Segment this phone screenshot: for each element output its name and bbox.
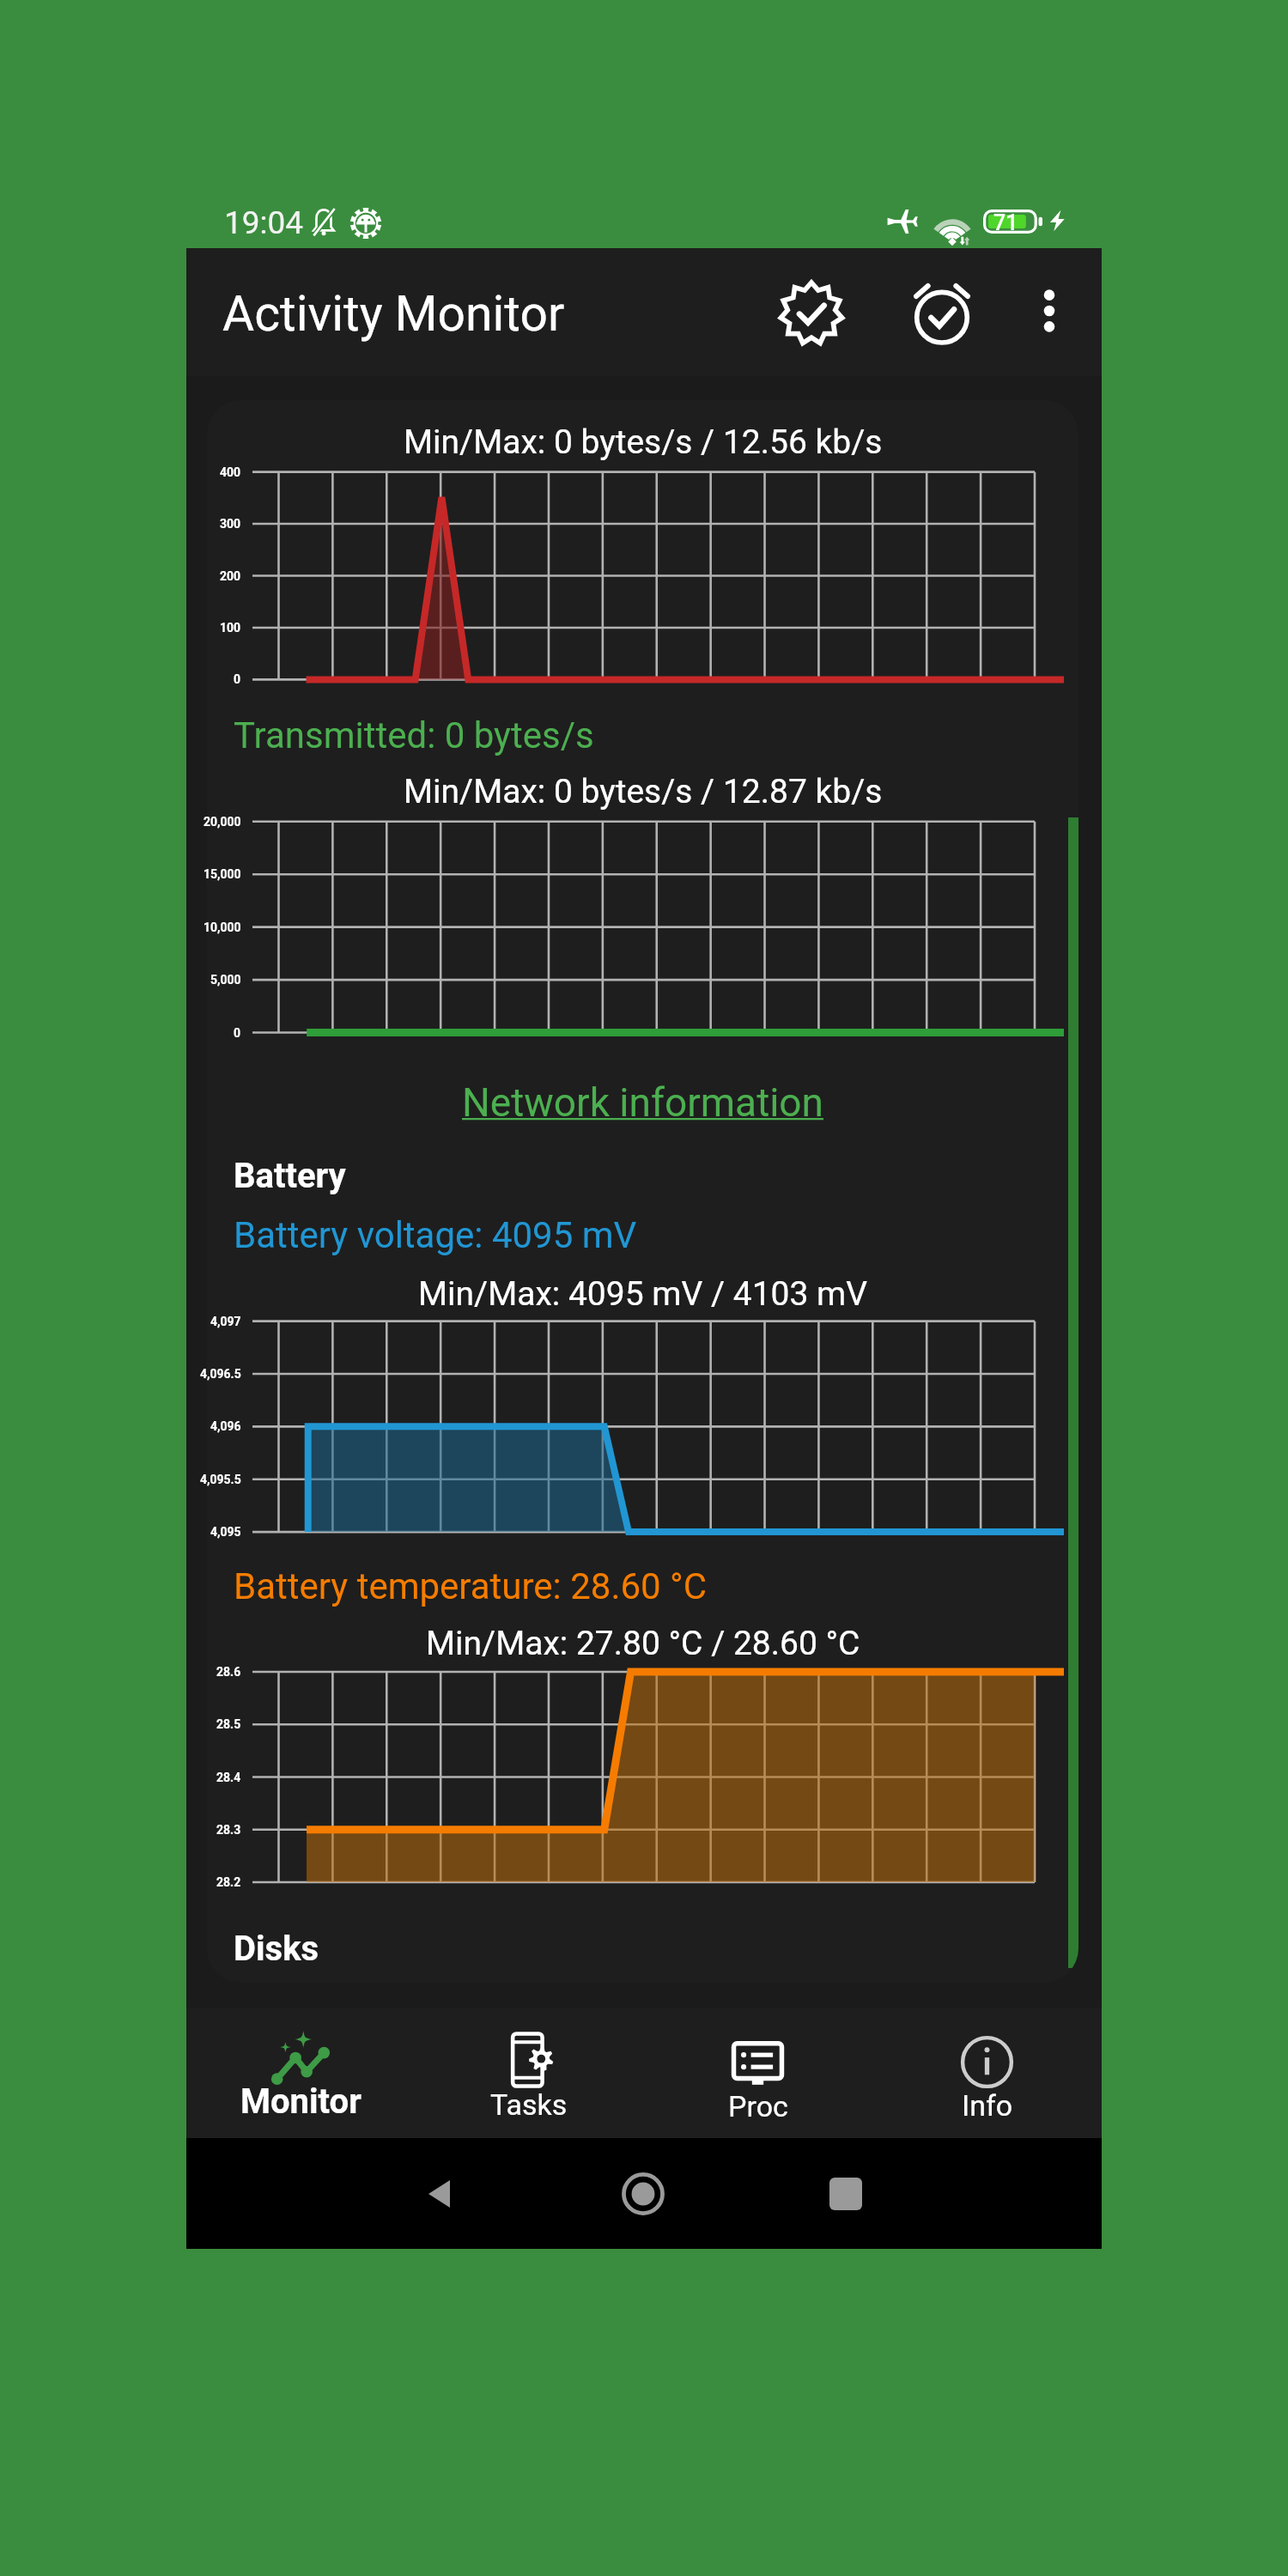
button[interactable]: Tasks — [415, 2008, 643, 2180]
staticText: 10,000 — [204, 920, 241, 934]
staticText: 0 — [234, 1026, 241, 1040]
staticText: Monitor — [240, 2081, 361, 2122]
staticText: 15,000 — [204, 867, 241, 881]
staticText: Activity Monitor — [222, 285, 565, 343]
staticText: Battery voltage: 4095 mV — [234, 1214, 637, 1256]
staticText: 28.2 — [216, 1875, 241, 1889]
button[interactable]: Alarm — [892, 264, 991, 362]
button[interactable]: Home — [566, 2138, 720, 2249]
staticText: 28.5 — [216, 1717, 241, 1731]
staticText: 4,096.5 — [200, 1367, 241, 1381]
staticText: 28.3 — [216, 1823, 241, 1837]
staticText: Min/Max: 27.80 °C / 28.60 °C — [426, 1624, 860, 1663]
button[interactable]: Network information — [462, 1079, 824, 1126]
staticText: 28.6 — [216, 1665, 241, 1679]
staticText: Tasks — [490, 2087, 568, 2122]
button[interactable]: Monitor — [186, 2008, 415, 2180]
staticText: Battery temperature: 28.60 °C — [234, 1565, 708, 1607]
staticText: 200 — [220, 569, 241, 583]
button[interactable]: Verified — [762, 264, 860, 362]
staticText: 4,097 — [210, 1315, 241, 1328]
staticText: 5,000 — [210, 973, 241, 987]
staticText: Min/Max: 4095 mV / 4103 mV — [418, 1274, 868, 1314]
staticText: 400 — [220, 465, 241, 479]
button[interactable]: Back — [363, 2138, 518, 2249]
staticText: 20,000 — [204, 815, 241, 829]
staticText: 4,095 — [210, 1525, 241, 1539]
staticText: 4,095.5 — [200, 1473, 241, 1486]
staticText: 71 — [993, 210, 1018, 235]
staticText: Battery — [234, 1156, 346, 1196]
staticText: 0 — [234, 672, 241, 686]
staticText: 4,096 — [210, 1419, 241, 1433]
staticText: 300 — [220, 517, 241, 531]
staticText: Proc — [728, 2089, 788, 2123]
staticText: Transmitted: 0 bytes/s — [234, 714, 594, 756]
button[interactable]: More options — [1002, 264, 1097, 358]
button[interactable]: Recents — [769, 2138, 923, 2249]
staticText: Min/Max: 0 bytes/s / 12.56 kb/s — [404, 422, 883, 462]
button[interactable]: Proc — [643, 2008, 872, 2180]
staticText: 28.4 — [216, 1771, 241, 1784]
staticText: Min/Max: 0 bytes/s / 12.87 kb/s — [404, 772, 883, 811]
staticText: Info — [962, 2088, 1013, 2123]
staticText: 100 — [220, 621, 241, 635]
staticText: 19:04 — [224, 204, 304, 241]
button[interactable]: Info — [872, 2008, 1102, 2180]
staticText: Disks — [234, 1929, 319, 1969]
